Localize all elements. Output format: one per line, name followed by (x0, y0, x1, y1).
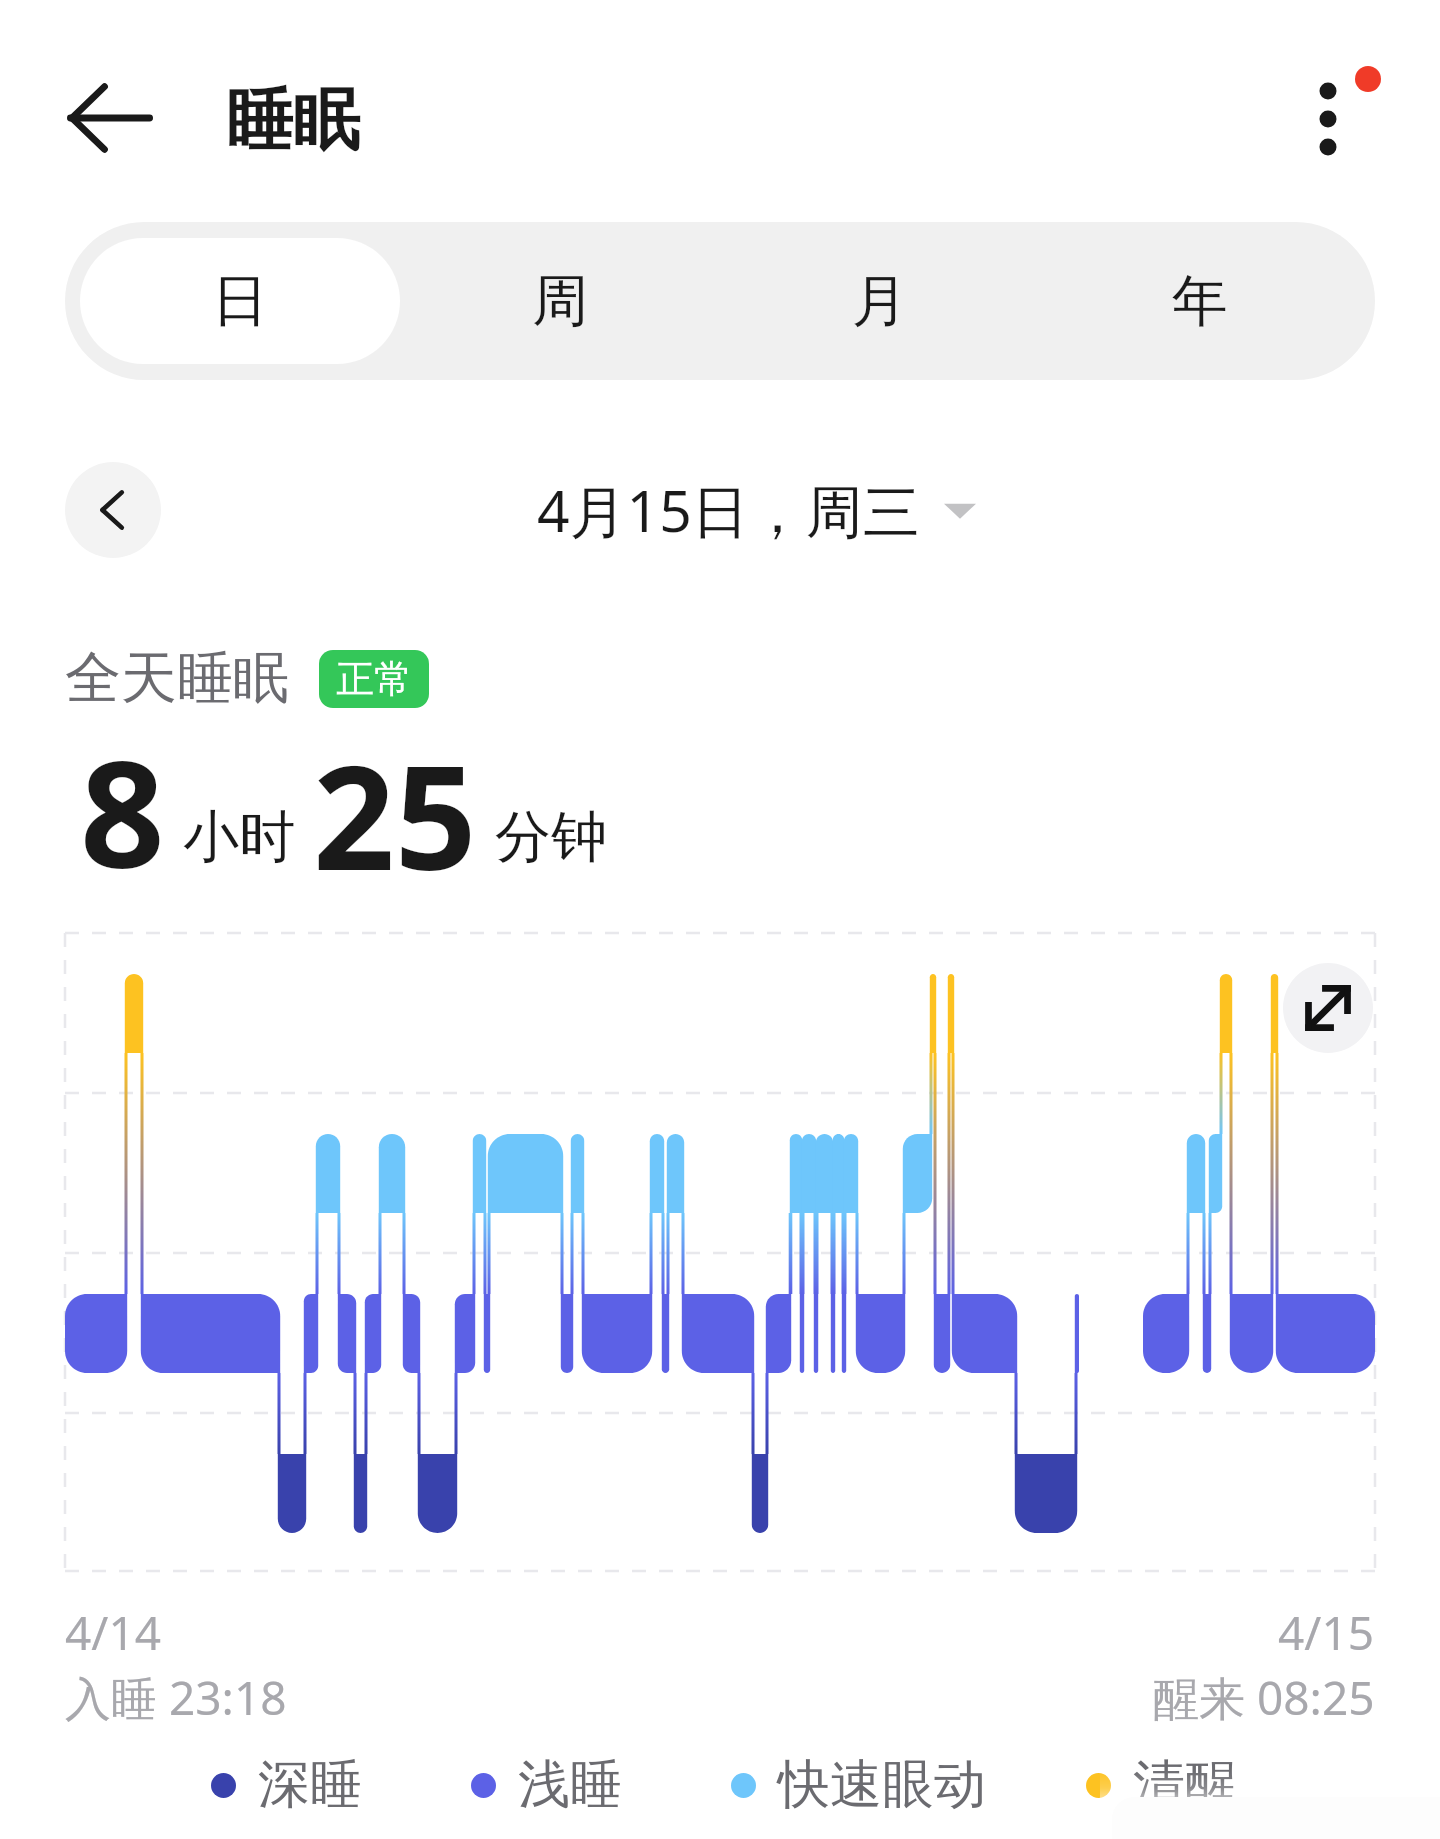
staticText: 浅睡 (518, 1752, 622, 1818)
staticText: 25 (313, 717, 477, 912)
button[interactable]: 清醒 (1086, 1752, 1237, 1818)
button[interactable]: Expand chart (1283, 963, 1373, 1053)
button[interactable]: More options (1282, 58, 1392, 168)
staticText: 分钟 (495, 802, 607, 873)
staticText: 8 (80, 710, 165, 912)
button[interactable]: Back (55, 63, 165, 173)
staticText: 4/14 (65, 1601, 162, 1664)
staticText: 睡眠 (226, 78, 360, 162)
staticText: 醒来 08:25 (1153, 1666, 1375, 1729)
staticText: 月 (852, 266, 908, 337)
staticText: 正常 (336, 655, 412, 703)
button[interactable]: 深睡 (211, 1752, 362, 1818)
staticText: 日 (212, 266, 268, 337)
button[interactable]: 4月15日，周三 (537, 471, 976, 549)
staticText: 小时 (183, 802, 295, 873)
staticText: 4月15日，周三 (537, 471, 920, 549)
staticText: 快速眼动 (778, 1752, 986, 1818)
button[interactable]: Previous day (65, 462, 161, 558)
button[interactable]: 年 (1040, 238, 1360, 364)
button[interactable]: 月 (720, 238, 1040, 364)
staticText: 周 (532, 266, 588, 337)
button[interactable]: 周 (400, 238, 720, 364)
staticText: 清醒 (1133, 1752, 1237, 1818)
staticText: 全天睡眠 (65, 643, 289, 714)
staticText: 入睡 23:18 (65, 1666, 287, 1729)
staticText: 年 (1172, 266, 1228, 337)
staticText: 4/15 (1278, 1601, 1375, 1664)
button[interactable]: 日 (80, 238, 400, 364)
button[interactable]: 快速眼动 (731, 1752, 986, 1818)
staticText: 深睡 (258, 1752, 362, 1818)
button[interactable]: 浅睡 (471, 1752, 622, 1818)
